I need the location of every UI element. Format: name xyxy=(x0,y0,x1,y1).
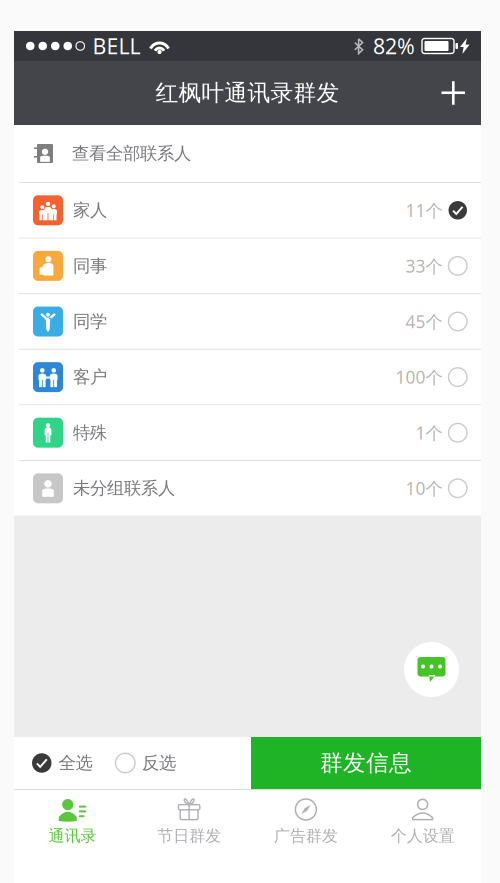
staticText: 通讯录 xyxy=(48,826,96,846)
button[interactable]: 反选 xyxy=(108,737,192,789)
button[interactable]: 家人 xyxy=(14,183,481,238)
staticText: 反选 xyxy=(142,752,176,774)
staticText: 10个 xyxy=(405,477,442,500)
staticText: 群发信息 xyxy=(320,749,412,777)
button[interactable]: 未分组联系人 xyxy=(14,461,481,516)
button[interactable]: Add contact group xyxy=(425,65,481,121)
button[interactable]: 广告群发 xyxy=(247,790,364,883)
staticText: 82% xyxy=(373,32,415,60)
button[interactable]: 个人设置 xyxy=(364,790,481,883)
button[interactable]: 通讯录 xyxy=(14,790,131,883)
staticText: BELL xyxy=(92,32,140,60)
staticText: 特殊 xyxy=(73,422,107,443)
staticText: 同事 xyxy=(73,255,107,277)
staticText: 33个 xyxy=(405,254,442,277)
button[interactable]: 查看全部联系人 xyxy=(14,125,481,182)
button[interactable]: New group message xyxy=(404,642,459,697)
button[interactable]: 特殊 xyxy=(14,405,481,460)
staticText: 全选 xyxy=(58,752,92,774)
staticText: 1个 xyxy=(415,421,442,444)
staticText: 家人 xyxy=(73,200,107,221)
staticText: 100个 xyxy=(395,366,442,389)
staticText: 客户 xyxy=(73,366,107,388)
staticText: 11个 xyxy=(405,199,442,222)
button[interactable]: 客户 xyxy=(14,350,481,404)
staticText: 未分组联系人 xyxy=(73,478,175,499)
staticText: 广告群发 xyxy=(274,826,338,846)
button[interactable]: 全选 xyxy=(14,737,108,789)
staticText: 节日群发 xyxy=(157,826,221,846)
staticText: 查看全部联系人 xyxy=(72,143,191,164)
button[interactable]: 群发信息 xyxy=(251,737,481,789)
staticText: 红枫叶通讯录群发 xyxy=(155,79,339,107)
staticText: 45个 xyxy=(405,310,442,333)
staticText: 个人设置 xyxy=(391,826,455,846)
button[interactable]: 同事 xyxy=(14,239,481,293)
button[interactable]: 节日群发 xyxy=(131,790,248,883)
staticText: 同学 xyxy=(73,311,107,332)
button[interactable]: 同学 xyxy=(14,294,481,349)
